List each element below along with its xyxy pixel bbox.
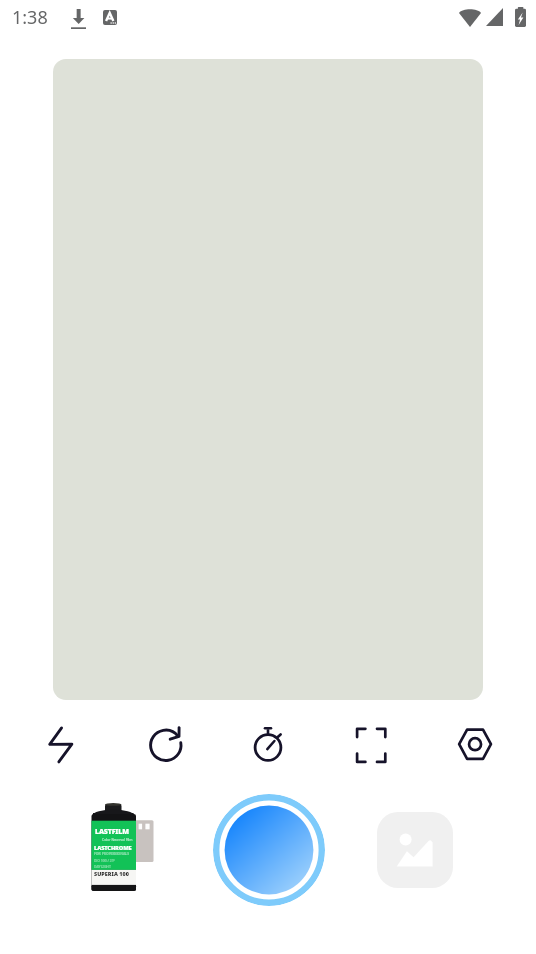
button[interactable]: Take photo xyxy=(213,794,325,906)
staticText: FOR PROFESSIONALS xyxy=(94,851,130,856)
button[interactable]: Settings xyxy=(451,721,499,769)
staticText: 1:38 xyxy=(12,5,48,30)
staticText: LASTCHROME xyxy=(94,844,132,852)
staticText: LASTFILM xyxy=(95,827,129,837)
button[interactable]: Film stock xyxy=(88,799,156,891)
button[interactable]: Gallery xyxy=(377,812,453,888)
staticText: DAYLIGHT xyxy=(94,864,111,869)
button[interactable]: Switch camera xyxy=(141,721,189,769)
button[interactable]: Timer xyxy=(244,721,292,769)
staticText: ISO 100 / 21° xyxy=(94,858,116,863)
button[interactable]: Flash xyxy=(37,721,85,769)
staticText: Color Reversal Film xyxy=(102,837,133,842)
staticText: SUPERIA 100 xyxy=(94,870,129,877)
button[interactable]: Aspect ratio xyxy=(347,721,395,769)
